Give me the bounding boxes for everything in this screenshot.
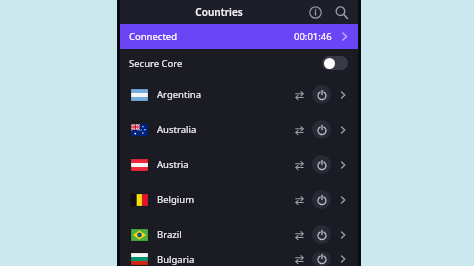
staticText: Connected: [129, 30, 178, 43]
button[interactable]: Connected: [120, 24, 358, 49]
button[interactable]: Switch server: [291, 252, 307, 266]
button[interactable]: Secure Core: [120, 49, 358, 77]
button[interactable]: Switch server: [291, 157, 307, 173]
button[interactable]: Open Brazil: [336, 228, 350, 242]
button[interactable]: Open Austria: [336, 158, 350, 172]
button[interactable]: Search: [330, 1, 352, 23]
staticText: Belgium: [157, 193, 195, 206]
button[interactable]: Bulgaria: [120, 252, 358, 266]
staticText: Bulgaria: [157, 253, 195, 266]
button[interactable]: Connect to Austria: [312, 155, 331, 174]
staticText: Austria: [157, 158, 189, 171]
button[interactable]: Switch server: [291, 192, 307, 208]
button[interactable]: Open Argentina: [336, 88, 350, 102]
button[interactable]: Open Belgium: [336, 193, 350, 207]
button[interactable]: Connect to Australia: [312, 120, 331, 139]
staticText: Australia: [157, 123, 197, 136]
button[interactable]: Connect to Brazil: [312, 225, 331, 244]
button[interactable]: Connect to Bulgaria: [312, 252, 331, 266]
button[interactable]: Secure Core toggle: [322, 56, 348, 70]
button[interactable]: Open Australia: [336, 123, 350, 137]
button[interactable]: Connect to Belgium: [312, 190, 331, 209]
staticText: 00:01:46: [294, 30, 332, 43]
button[interactable]: Argentina: [120, 77, 358, 112]
button[interactable]: Switch server: [291, 87, 307, 103]
button[interactable]: Open Bulgaria: [336, 252, 350, 266]
button[interactable]: Australia: [120, 112, 358, 147]
staticText: Secure Core: [129, 57, 183, 70]
button[interactable]: Connect to Argentina: [312, 85, 331, 104]
staticText: Argentina: [157, 88, 202, 101]
button[interactable]: Austria: [120, 147, 358, 182]
staticText: Countries: [195, 5, 243, 19]
staticText: Brazil: [157, 228, 182, 241]
button[interactable]: Switch server: [291, 122, 307, 138]
button[interactable]: Brazil: [120, 217, 358, 252]
button[interactable]: Switch server: [291, 227, 307, 243]
button[interactable]: Info: [304, 1, 326, 23]
button[interactable]: Belgium: [120, 182, 358, 217]
